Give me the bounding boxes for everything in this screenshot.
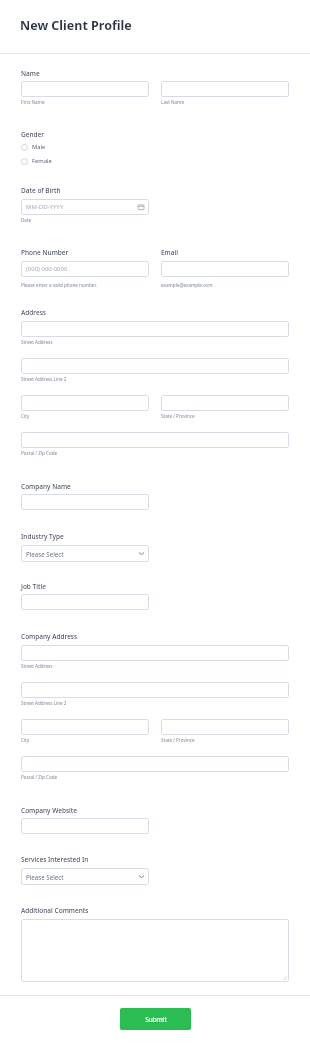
staticText: Job Title: [21, 582, 46, 591]
button[interactable]: Female: [21, 156, 52, 166]
button[interactable]: Street Address Line 2: [21, 358, 289, 374]
staticText: Street Address Line 2: [21, 376, 67, 382]
button[interactable]: Postal / Zip Code: [21, 432, 289, 448]
staticText: Industry Type: [21, 532, 64, 541]
staticText: Additional Comments: [21, 906, 89, 915]
staticText: Postal / Zip Code: [21, 450, 58, 456]
button[interactable]: Company Name: [21, 494, 149, 510]
staticText: Phone Number: [21, 248, 69, 257]
staticText: Services Interested In: [21, 855, 89, 864]
staticText: Street Address Line 2: [21, 700, 67, 706]
staticText: Name: [21, 69, 40, 78]
button[interactable]: Additional Comments: [21, 919, 289, 982]
staticText: Please enter a valid phone number.: [21, 282, 97, 288]
button[interactable]: Street Address: [21, 321, 289, 337]
button[interactable]: State / Province: [161, 395, 289, 411]
button[interactable]: Street Address Line 2: [21, 682, 289, 698]
staticText: Street Address: [21, 663, 53, 669]
staticText: Email: [161, 248, 179, 257]
staticText: New Client Profile: [20, 17, 132, 34]
staticText: Last Name: [161, 99, 184, 105]
staticText: Female: [32, 157, 52, 165]
button[interactable]: Phone Number: [21, 261, 149, 277]
staticText: (000) 000-0000: [26, 265, 68, 273]
staticText: Submit: [145, 1015, 167, 1024]
button[interactable]: State / Province: [161, 719, 289, 735]
staticText: Postal / Zip Code: [21, 774, 58, 780]
button[interactable]: Last Name: [161, 81, 289, 97]
staticText: State / Province: [161, 413, 195, 419]
staticText: City: [21, 413, 30, 419]
staticText: Please Select: [26, 873, 64, 881]
staticText: Gender: [21, 130, 45, 139]
staticText: Company Address: [21, 632, 78, 641]
staticText: Street Address: [21, 339, 53, 345]
staticText: Company Name: [21, 482, 71, 491]
button[interactable]: Date of Birth: [21, 199, 149, 215]
button[interactable]: Services Interested In: [21, 868, 149, 885]
button[interactable]: Email: [161, 261, 289, 277]
button[interactable]: First Name: [21, 81, 149, 97]
button[interactable]: City: [21, 395, 149, 411]
button[interactable]: Job Title: [21, 594, 149, 610]
button[interactable]: Company Website: [21, 818, 149, 834]
staticText: Address: [21, 308, 46, 317]
button[interactable]: Submit: [120, 1008, 191, 1030]
staticText: Date: [21, 217, 32, 223]
button[interactable]: Street Address: [21, 645, 289, 661]
staticText: State / Province: [161, 737, 195, 743]
staticText: Please Select: [26, 550, 64, 558]
staticText: Male: [32, 143, 46, 151]
staticText: MM-DD-YYYY: [26, 203, 64, 211]
button[interactable]: City: [21, 719, 149, 735]
button[interactable]: Male: [21, 142, 46, 152]
staticText: First Name: [21, 99, 45, 105]
staticText: Company Website: [21, 806, 78, 815]
staticText: City: [21, 737, 30, 743]
staticText: Date of Birth: [21, 186, 61, 195]
staticText: example@example.com: [161, 282, 213, 288]
button[interactable]: Industry Type: [21, 545, 149, 562]
button[interactable]: Postal / Zip Code: [21, 756, 289, 772]
